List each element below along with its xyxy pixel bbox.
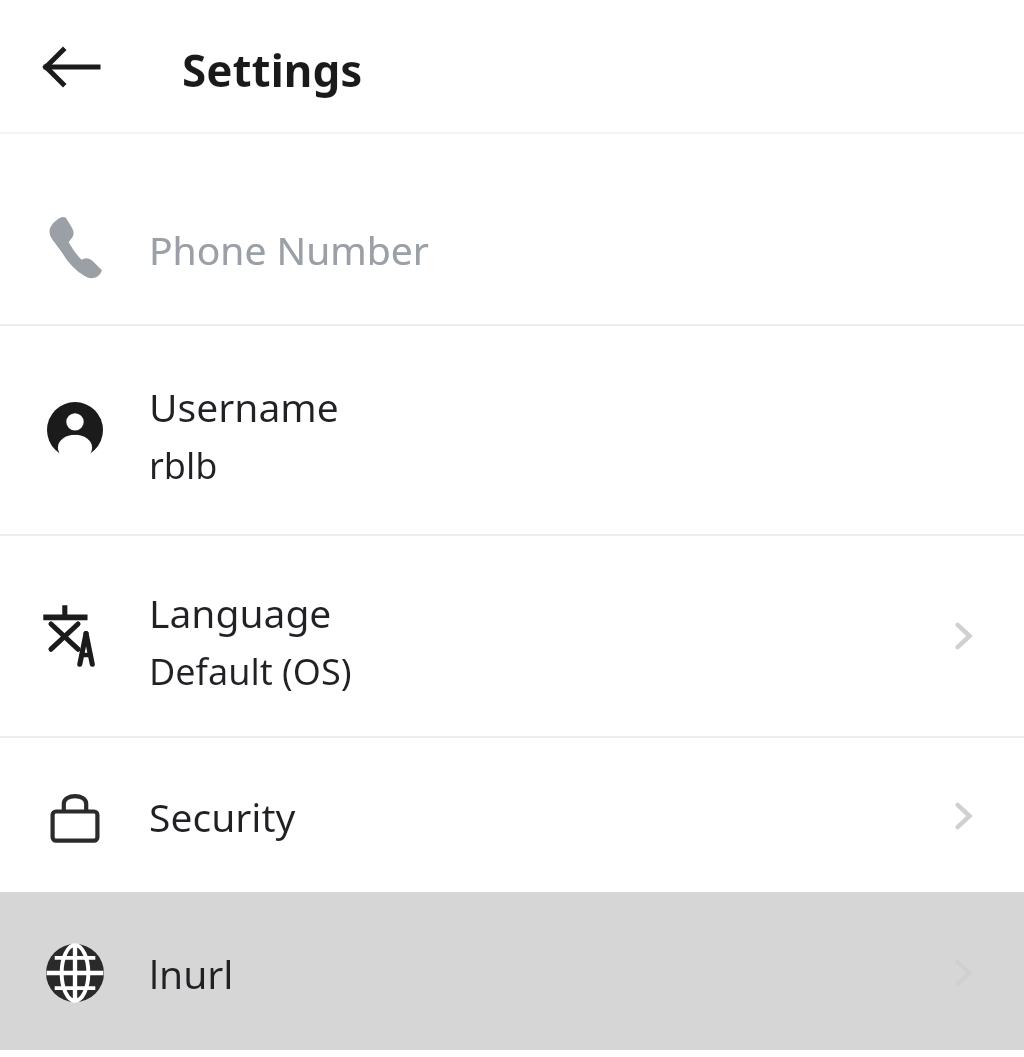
staticText: rblb (149, 441, 218, 490)
button[interactable]: Language (0, 536, 1024, 736)
staticText: Settings (182, 40, 363, 100)
button[interactable]: Phone Number (0, 134, 1024, 324)
button[interactable]: lnurl (0, 892, 1024, 1050)
staticText: Security (149, 790, 296, 843)
staticText: Phone Number (149, 223, 429, 276)
staticText: Language (149, 586, 332, 639)
staticText: lnurl (149, 947, 234, 1000)
button[interactable]: Back (24, 43, 120, 91)
button[interactable]: Username (0, 326, 1024, 534)
staticText: Default (OS) (149, 647, 352, 696)
staticText: Username (149, 380, 339, 433)
button[interactable]: Security (0, 738, 1024, 892)
